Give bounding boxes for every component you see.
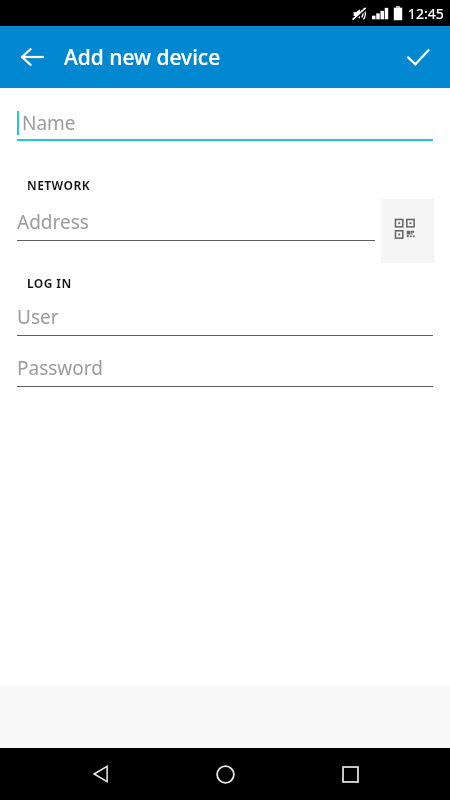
button[interactable]: User [17,304,433,330]
button[interactable]: Back [77,750,125,798]
staticText: NETWORK [27,177,91,193]
button[interactable]: Home [201,750,249,798]
staticText: Add new device [64,43,221,72]
button[interactable]: Password [17,355,433,381]
button[interactable]: Scan QR code [381,199,434,263]
button[interactable]: Address [17,209,375,235]
staticText: Name [22,110,76,136]
staticText: Password [17,355,103,381]
staticText: Address [17,209,89,235]
button[interactable]: Back [6,31,58,83]
staticText: 12:45 [408,4,444,23]
staticText: LOG IN [27,275,72,291]
button[interactable]: Confirm [392,31,444,83]
staticText: User [17,304,59,330]
button[interactable]: Recent apps [326,750,374,798]
button[interactable]: Name [17,110,433,136]
